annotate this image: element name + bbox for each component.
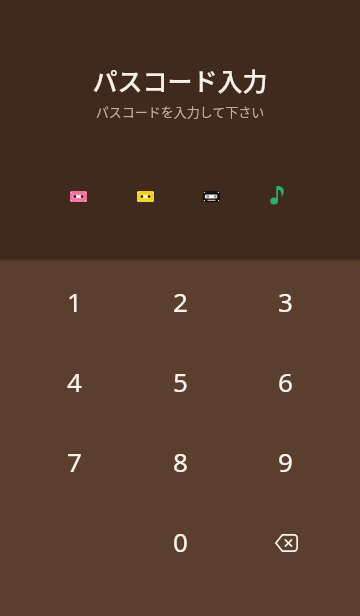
button[interactable]: 1 (22, 261, 127, 341)
staticText: 3 (278, 284, 293, 319)
button[interactable]: 5 (128, 341, 233, 421)
staticText: 9 (278, 444, 293, 479)
button[interactable]: 7 (22, 421, 127, 501)
button[interactable]: 8 (128, 421, 233, 501)
button[interactable]: 6 (233, 341, 338, 421)
staticText: 1 (67, 284, 82, 319)
staticText: 0 (173, 524, 188, 559)
button[interactable]: 3 (233, 261, 338, 341)
staticText: 2 (173, 284, 188, 319)
staticText: 5 (173, 364, 188, 399)
staticText: 7 (67, 444, 82, 479)
button[interactable]: 0 (128, 501, 233, 581)
staticText: 4 (67, 364, 82, 399)
staticText: 8 (173, 444, 188, 479)
staticText: パスコードを入力して下さい (0, 102, 360, 121)
button[interactable]: 9 (233, 421, 338, 501)
button[interactable]: 2 (128, 261, 233, 341)
staticText: 6 (278, 364, 293, 399)
button[interactable]: 4 (22, 341, 127, 421)
staticText: パスコード入力 (0, 62, 360, 98)
button[interactable]: Backspace (234, 503, 339, 583)
